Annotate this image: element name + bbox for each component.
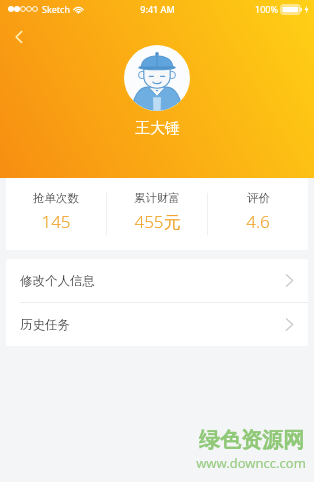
button[interactable]: Back — [4, 22, 34, 52]
staticText: 绿色资源网 — [199, 427, 304, 453]
staticText: 100% — [255, 3, 278, 15]
staticText: 抢单次数 — [33, 191, 79, 205]
staticText: 455元 — [134, 210, 181, 233]
button[interactable]: 抢单次数 — [6, 178, 106, 233]
staticText: 4.6 — [246, 210, 270, 233]
staticText: 王大锤 — [135, 119, 180, 138]
button[interactable]: 修改个人信息 — [6, 259, 308, 302]
staticText: 145 — [41, 210, 71, 233]
staticText: 累计财富 — [134, 191, 180, 205]
button[interactable]: 历史任务 — [6, 303, 308, 346]
staticText: 修改个人信息 — [20, 273, 95, 289]
staticText: 9:41 AM — [140, 3, 175, 15]
button[interactable]: 累计财富 — [107, 178, 207, 233]
staticText: www.downcc.com — [196, 454, 306, 472]
staticText: 历史任务 — [20, 317, 70, 333]
staticText: Sketch — [42, 3, 70, 15]
staticText: 评价 — [247, 191, 270, 205]
button[interactable]: 评价 — [208, 178, 308, 233]
